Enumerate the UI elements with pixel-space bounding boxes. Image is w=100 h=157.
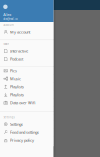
button[interactable]: Music [0,75,53,83]
staticText: Settings [10,121,23,127]
button[interactable]: Playlists [0,91,53,99]
button[interactable]: My account [0,28,53,36]
button[interactable]: Settings [0,120,53,128]
staticText: My account [10,29,30,35]
staticText: Alex [3,12,11,17]
staticText: Data over Wifi [10,100,35,105]
staticText: Podcast [10,56,23,62]
button[interactable]: Playlists [0,83,53,91]
staticText: Privacy policy [10,137,34,143]
staticText: Music [10,76,21,81]
staticText: Playlists [10,92,24,97]
staticText: Settings [3,115,14,119]
staticText: Main [3,42,9,46]
staticText: Feed and settings [10,129,39,135]
button[interactable]: Feed and settings [0,128,53,136]
button[interactable]: Data over Wifi [0,99,53,107]
button[interactable]: Interactive [0,47,53,55]
button[interactable]: Pics [0,67,53,75]
staticText: Interactive [10,48,28,54]
staticText: Account [3,23,14,27]
button[interactable]: Podcast [0,55,53,63]
staticText: Playlists [10,84,24,89]
staticText: alex@mail.co [3,17,18,21]
staticText: Pics [10,68,17,73]
button[interactable]: Privacy policy [0,136,53,144]
